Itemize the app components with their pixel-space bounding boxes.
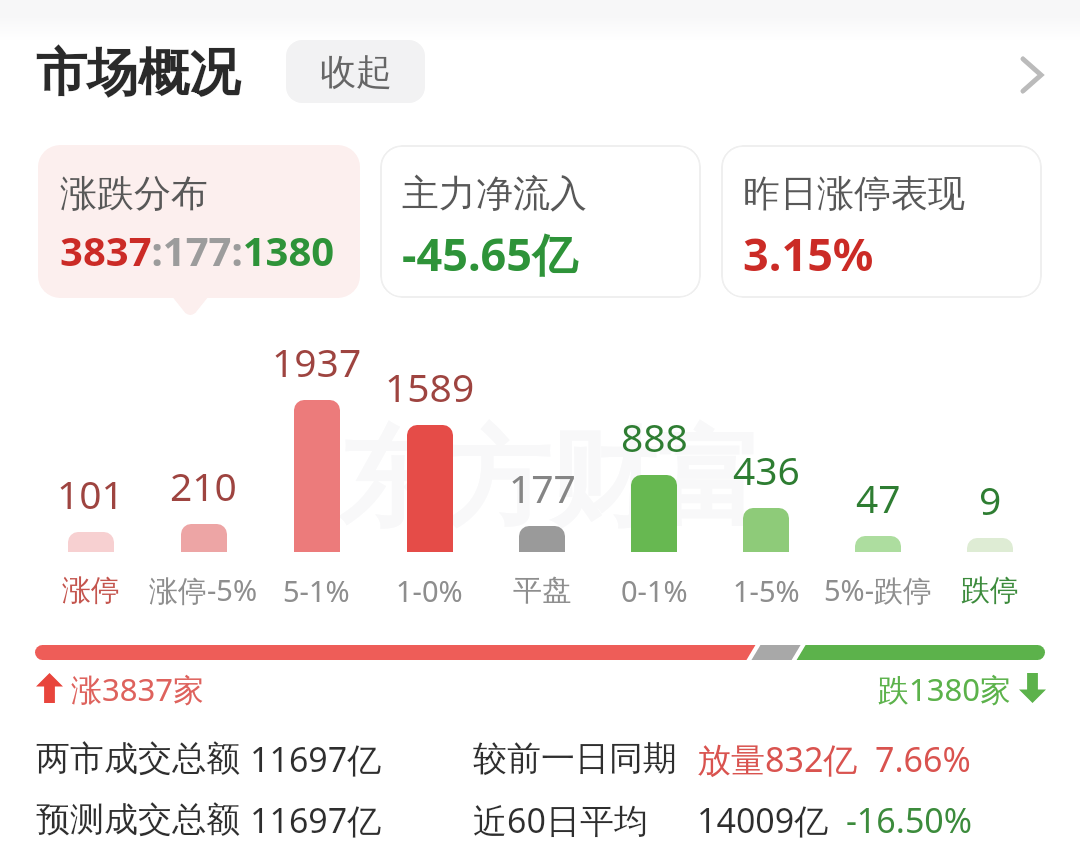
staticText: 跌停: [961, 572, 1019, 609]
staticText: 177: [509, 461, 576, 514]
staticText: 5%-跌停: [824, 570, 933, 610]
staticText: 平盘: [513, 572, 571, 609]
staticText: 210: [170, 459, 237, 512]
staticText: 14009亿 -16.50%: [697, 797, 973, 841]
staticText: 跌1380家: [878, 668, 1011, 708]
staticText: 放量832亿 7.66%: [697, 736, 971, 780]
staticText: 3.15%: [743, 223, 874, 284]
staticText: 涨停: [62, 572, 120, 609]
staticText: 涨跌分布: [60, 170, 208, 217]
staticText: 11697亿: [250, 736, 382, 780]
staticText: 888: [621, 410, 688, 463]
button[interactable]: 昨日涨停表现: [721, 145, 1042, 298]
staticText: 1-0%: [396, 571, 463, 610]
button[interactable]: 涨跌分布: [38, 145, 360, 298]
staticText: 5-1%: [283, 571, 350, 610]
staticText: 1937: [272, 335, 362, 388]
button[interactable]: 市场概况: [36, 0, 240, 145]
staticText: 9: [979, 473, 1002, 526]
staticText: 主力净流入: [402, 170, 587, 217]
staticText: 1-5%: [733, 571, 800, 610]
staticText: 涨停-5%: [149, 570, 258, 610]
staticText: 涨3837家: [71, 668, 204, 708]
staticText: 近60日平均: [473, 797, 648, 841]
staticText: 两市成交总额: [36, 737, 240, 780]
staticText: 较前一日同期: [473, 737, 677, 780]
button[interactable]: 主力净流入: [380, 145, 701, 298]
staticText: 0-1%: [621, 571, 688, 610]
staticText: 昨日涨停表现: [743, 170, 965, 217]
staticText: 1589: [385, 360, 475, 413]
staticText: 3837:177:1380: [60, 223, 335, 277]
staticText: 预测成交总额: [36, 798, 240, 841]
staticText: 101: [57, 467, 124, 520]
staticText: 东方财富: [338, 413, 762, 547]
staticText: 47: [856, 471, 901, 524]
staticText: 收起: [320, 49, 392, 94]
staticText: 11697亿: [250, 797, 382, 841]
button[interactable]: 收起: [286, 40, 425, 103]
staticText: 市场概况: [36, 41, 240, 105]
staticText: 436: [733, 443, 800, 496]
staticText: -45.65亿: [402, 223, 578, 284]
button[interactable]: Expand market overview: [997, 40, 1067, 110]
